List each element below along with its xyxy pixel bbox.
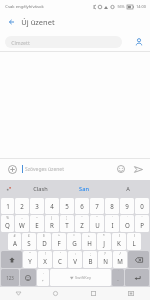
button[interactable]: SwiftKey: [50, 269, 111, 286]
staticText: U: [95, 221, 100, 229]
button[interactable]: Back: [0, 287, 37, 300]
button[interactable]: ˏ: [37, 269, 49, 286]
button[interactable]: Backspace: [128, 251, 149, 268]
button[interactable]: -: [15, 215, 29, 232]
staticText: A: [126, 185, 130, 193]
button[interactable]: Shift: [1, 251, 22, 268]
button[interactable]: 1: [1, 198, 14, 214]
button[interactable]: Emoji: [114, 162, 128, 176]
button[interactable]: /: [113, 251, 127, 268]
staticText: 14:00: [136, 4, 146, 9]
staticText: ¦: [66, 216, 68, 220]
staticText: 3: [35, 202, 39, 210]
button[interactable]: ;: [83, 251, 97, 268]
staticText: Címzett: [11, 39, 30, 46]
staticText: Csak engélyhívások: [5, 4, 44, 10]
staticText: Clash: [33, 185, 48, 193]
button[interactable]: Back: [3, 14, 19, 30]
staticText: /: [119, 252, 121, 256]
button[interactable]: (: [112, 233, 126, 250]
staticText: 123: [6, 275, 14, 281]
button[interactable]: Hide keyboard: [112, 287, 150, 300]
button[interactable]: %: [1, 215, 14, 232]
staticText: .: [117, 275, 119, 282]
staticText: ^: [58, 234, 60, 238]
button[interactable]: 123: [1, 269, 19, 286]
button[interactable]: Címzett: [5, 36, 122, 48]
button[interactable]: £: [22, 233, 36, 250]
staticText: +: [88, 234, 90, 238]
staticText: N: [103, 257, 108, 265]
staticText: 7: [95, 202, 99, 210]
staticText: L: [132, 239, 136, 247]
button[interactable]: Add attachment: [4, 161, 20, 177]
button[interactable]: 0: [135, 198, 149, 214]
staticText: 2: [20, 202, 24, 210]
button[interactable]: ~: [30, 215, 44, 232]
button[interactable]: ˝: [90, 215, 104, 232]
staticText: ': [60, 252, 61, 256]
button[interactable]: ˙: [120, 215, 134, 232]
staticText: *: [103, 234, 105, 238]
button[interactable]: Keyboard menu: [0, 180, 18, 197]
button[interactable]: Send: [130, 161, 146, 177]
button[interactable]: ¦: [60, 215, 74, 232]
staticText: |: [51, 216, 53, 220]
button[interactable]: #: [8, 233, 21, 250]
button[interactable]: ': [53, 251, 67, 268]
button[interactable]: ": [23, 251, 37, 268]
button[interactable]: +: [82, 233, 96, 250]
button[interactable]: ^: [52, 233, 66, 250]
button[interactable]: A: [106, 180, 150, 197]
staticText: S: [27, 239, 31, 247]
button[interactable]: 9: [120, 198, 134, 214]
staticText: R: [50, 221, 54, 229]
button[interactable]: |: [45, 215, 59, 232]
staticText: 5: [65, 202, 69, 210]
staticText: A: [13, 239, 17, 247]
staticText: X: [43, 257, 47, 265]
staticText: ˙: [127, 216, 128, 220]
button[interactable]: *: [97, 233, 111, 250]
staticText: !: [45, 252, 46, 256]
button[interactable]: 6: [75, 198, 89, 214]
staticText: G: [72, 239, 77, 247]
button[interactable]: Szöveges üzenet: [22, 162, 114, 176]
button[interactable]: :: [68, 251, 82, 268]
button[interactable]: 2: [15, 198, 29, 214]
button[interactable]: ?: [98, 251, 112, 268]
button[interactable]: Clash: [18, 180, 62, 197]
staticText: ): [134, 234, 135, 238]
button[interactable]: ): [127, 233, 141, 250]
staticText: :: [75, 252, 76, 256]
button[interactable]: $: [37, 233, 51, 250]
button[interactable]: 7: [90, 198, 104, 214]
staticText: 6: [80, 202, 84, 210]
button[interactable]: San: [62, 180, 106, 197]
button[interactable]: ´: [105, 215, 119, 232]
staticText: ´: [112, 216, 113, 220]
button[interactable]: 3: [30, 198, 44, 214]
button[interactable]: Recents: [74, 287, 112, 300]
staticText: ˝: [96, 216, 98, 220]
button[interactable]: 8: [105, 198, 119, 214]
staticText: Q: [5, 221, 10, 229]
staticText: Új üzenet: [21, 17, 55, 27]
staticText: £: [28, 234, 30, 238]
button[interactable]: Enter: [125, 269, 149, 286]
staticText: P: [140, 221, 144, 229]
staticText: 1: [6, 202, 10, 210]
button[interactable]: Add contact: [131, 34, 147, 50]
button[interactable]: °: [67, 233, 81, 250]
button[interactable]: Emoji: [20, 269, 36, 286]
button[interactable]: Home: [37, 287, 74, 300]
button[interactable]: 5: [60, 198, 74, 214]
button[interactable]: ˇ: [75, 215, 89, 232]
staticText: 4: [50, 202, 54, 210]
button[interactable]: 4: [45, 198, 59, 214]
button[interactable]: !: [38, 251, 52, 268]
button[interactable]: ¨: [135, 215, 149, 232]
staticText: ˏ: [43, 270, 44, 274]
